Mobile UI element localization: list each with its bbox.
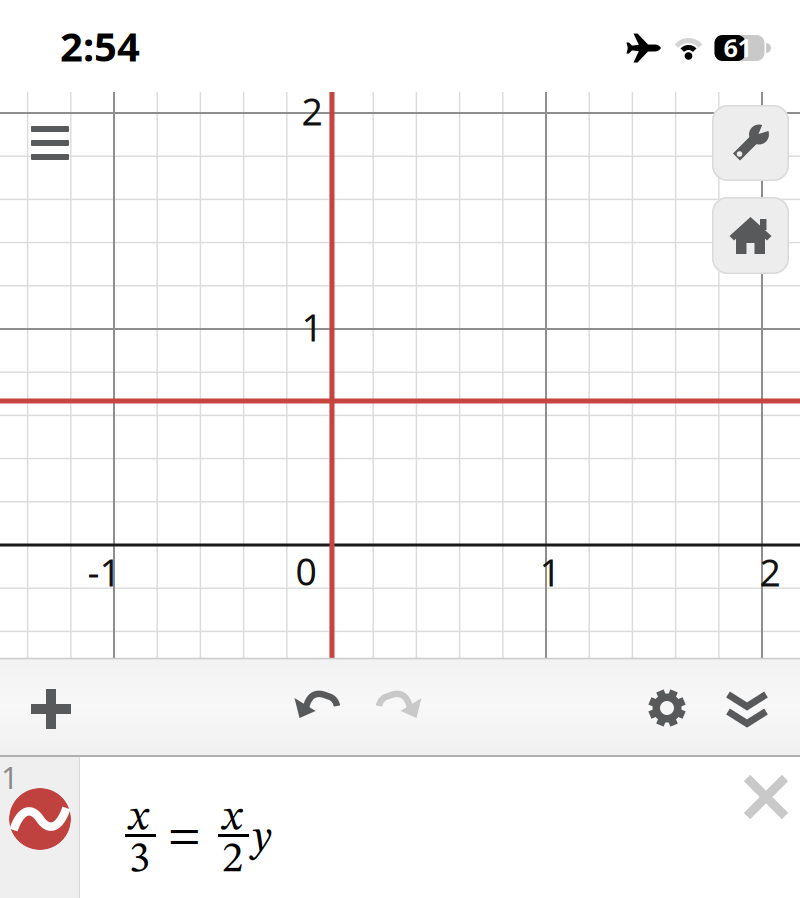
staticText: 1 bbox=[539, 547, 560, 597]
button[interactable]: Delete expression bbox=[747, 778, 785, 816]
staticText: 1 bbox=[301, 302, 322, 352]
button[interactable]: Expression 1: x over 3 equals x over 2 y bbox=[80, 757, 800, 898]
staticText: 61 bbox=[723, 31, 751, 64]
button[interactable]: Graph settings bbox=[712, 105, 789, 181]
staticText: 1 bbox=[1, 757, 19, 797]
button[interactable]: Open main menu bbox=[22, 118, 78, 168]
button[interactable]: Hide expression 1 bbox=[9, 788, 71, 850]
staticText: 0 bbox=[295, 546, 316, 596]
button[interactable]: Default viewport bbox=[712, 197, 789, 274]
button[interactable]: Settings bbox=[647, 688, 687, 728]
staticText: 2 bbox=[222, 839, 243, 881]
button[interactable]: Add expression bbox=[31, 689, 71, 729]
staticText: -1 bbox=[87, 547, 120, 597]
button[interactable]: Redo bbox=[376, 687, 421, 721]
staticText: x bbox=[222, 797, 241, 840]
button[interactable]: Hide expression list bbox=[728, 692, 766, 725]
staticText: y bbox=[252, 818, 271, 860]
staticText: x bbox=[129, 797, 148, 840]
staticText: 3 bbox=[129, 839, 150, 881]
staticText: = bbox=[168, 814, 201, 860]
staticText: 2 bbox=[759, 547, 780, 597]
staticText: 2:54 bbox=[60, 19, 140, 72]
staticText: 2 bbox=[301, 86, 322, 136]
button[interactable]: Undo bbox=[294, 687, 339, 721]
